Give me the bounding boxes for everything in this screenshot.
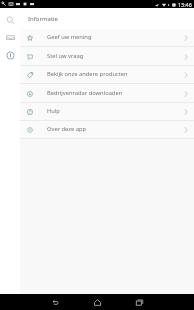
staticText: Hulp (47, 107, 60, 115)
staticText: Geef uw mening (47, 33, 92, 41)
button[interactable]: Hulp (20, 103, 194, 121)
button[interactable]: Information (0, 50, 20, 60)
button[interactable]: Bekijk onze andere producten (20, 66, 194, 84)
button[interactable]: Stel uw vraag (20, 47, 194, 66)
staticText: Bekijk onze andere producten (47, 70, 128, 78)
button[interactable]: Search (0, 15, 20, 25)
button[interactable]: Bedrijvenradar downloaden (20, 84, 194, 103)
staticText: Informatie (28, 15, 58, 23)
button[interactable]: Geef uw mening (20, 29, 194, 47)
button[interactable]: Home (76, 294, 118, 310)
button[interactable]: Recent apps (118, 294, 160, 310)
staticText: Stel uw vraag (47, 52, 84, 60)
staticText: Bedrijvenradar downloaden (47, 89, 123, 97)
button[interactable]: Over deze app (20, 121, 194, 139)
staticText: 13:46 (178, 1, 192, 8)
button[interactable]: Inbox (0, 32, 20, 42)
button[interactable]: Back (34, 294, 76, 310)
staticText: Over deze app (47, 125, 86, 133)
